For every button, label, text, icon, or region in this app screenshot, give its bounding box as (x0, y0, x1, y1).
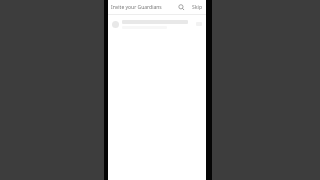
button[interactable]: Search (175, 1, 187, 13)
button[interactable] (108, 15, 206, 33)
button[interactable]: Skip (190, 2, 204, 13)
staticText: Invite your Guardians (111, 4, 162, 11)
staticText: Skip (192, 4, 202, 11)
button[interactable]: Invite your Guardians (111, 4, 175, 11)
